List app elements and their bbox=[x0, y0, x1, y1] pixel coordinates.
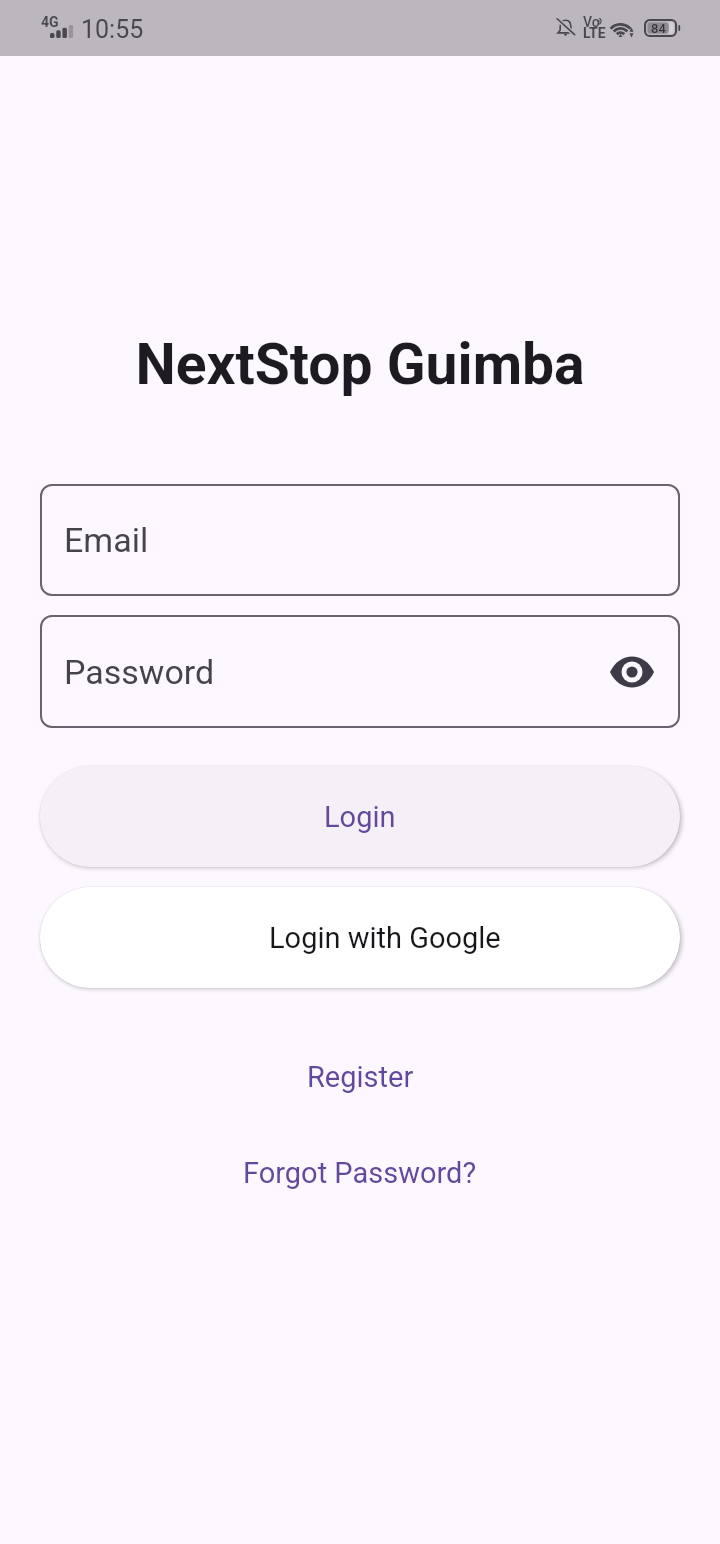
staticText: Vo bbox=[583, 14, 600, 30]
button[interactable]: Forgot Password? bbox=[215, 1138, 505, 1208]
button[interactable]: Password bbox=[40, 615, 680, 728]
staticText: Login bbox=[324, 800, 396, 834]
staticText: Register bbox=[307, 1060, 414, 1094]
staticText: 10:55 bbox=[81, 15, 144, 44]
button[interactable]: Email bbox=[40, 484, 680, 596]
staticText: Login with Google bbox=[269, 921, 501, 955]
staticText: Email bbox=[64, 520, 149, 560]
button[interactable]: Login with Google bbox=[40, 887, 680, 988]
button[interactable]: Register bbox=[279, 1042, 442, 1112]
staticText: 4G bbox=[41, 14, 59, 30]
staticText: LTE bbox=[583, 25, 606, 41]
staticText: NextStop Guimba bbox=[135, 331, 585, 398]
staticText: Forgot Password? bbox=[243, 1156, 477, 1190]
button[interactable]: Login bbox=[40, 766, 680, 867]
button[interactable]: Show password bbox=[602, 642, 662, 702]
staticText: Password bbox=[64, 652, 215, 692]
staticText: 84 bbox=[651, 21, 666, 36]
